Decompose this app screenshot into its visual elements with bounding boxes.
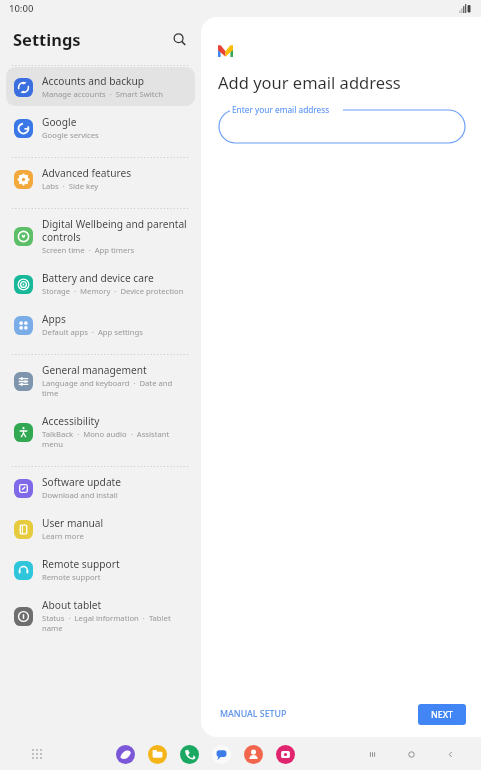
button[interactable]: Google [6,108,195,147]
staticText: Remote support [42,557,120,571]
staticText: MANUAL SETUP [220,708,287,720]
button[interactable]: MANUAL SETUP [218,702,289,726]
staticText: Storage · Memory · Device protection [42,286,184,296]
staticText: Settings [13,28,81,50]
button[interactable]: General management [6,356,195,405]
button[interactable]: Contacts [242,743,264,765]
staticText: Software update [42,475,122,489]
staticText: Learn more [42,531,84,541]
button[interactable]: Home [401,744,421,764]
button[interactable]: User manual [6,509,195,548]
staticText: User manual [42,516,104,530]
staticText: TalkBack · Mono audio · Assistant menu [42,429,190,449]
staticText: Battery and device care [42,271,154,285]
staticText: Default apps · App settings [42,327,143,337]
staticText: Remote support [42,572,101,582]
staticText: Language and keyboard · Date and time [42,378,190,398]
button[interactable]: Accessibility [6,407,195,456]
staticText: Labs · Side key [42,181,99,191]
button[interactable]: About tablet [6,591,195,640]
button[interactable]: Phone [178,743,200,765]
staticText: Status · Legal information · Tablet name [42,613,190,633]
button[interactable]: Software update [6,468,195,507]
button[interactable]: Recents [362,744,382,764]
button[interactable]: Internet [114,743,136,765]
staticText: General management [42,363,147,377]
button[interactable]: Apps [6,305,195,344]
button[interactable]: NEXT [418,704,466,725]
staticText: Accessibility [42,414,100,428]
staticText: Screen time · App timers [42,245,135,255]
staticText: 10:00 [9,2,34,15]
staticText: Advanced features [42,166,132,180]
button[interactable]: Gallery [274,743,296,765]
button[interactable]: Apps list [26,743,48,765]
staticText: Accounts and backup [42,74,145,88]
button[interactable]: My Files [146,743,168,765]
staticText: About tablet [42,598,102,612]
button[interactable]: Search [166,26,192,52]
button[interactable]: Remote support [6,550,195,589]
button[interactable]: Advanced features [6,159,195,198]
button[interactable]: Enter your email address [218,109,466,144]
staticText: Download and install [42,490,118,500]
staticText: Manage accounts · Smart Switch [42,89,163,99]
button[interactable]: Back [440,744,460,764]
staticText: Google [42,115,77,129]
button[interactable]: Accounts and backup [6,67,195,106]
staticText: Google services [42,130,99,140]
button[interactable]: Digital Wellbeing and parental controls [6,210,195,262]
staticText: Digital Wellbeing and parental controls [42,217,190,244]
staticText: Apps [42,312,66,326]
staticText: Add your email address [218,71,401,93]
button[interactable]: Messages [210,743,232,765]
button[interactable]: Battery and device care [6,264,195,303]
staticText: NEXT [431,709,454,721]
staticText: Enter your email address [232,104,330,115]
